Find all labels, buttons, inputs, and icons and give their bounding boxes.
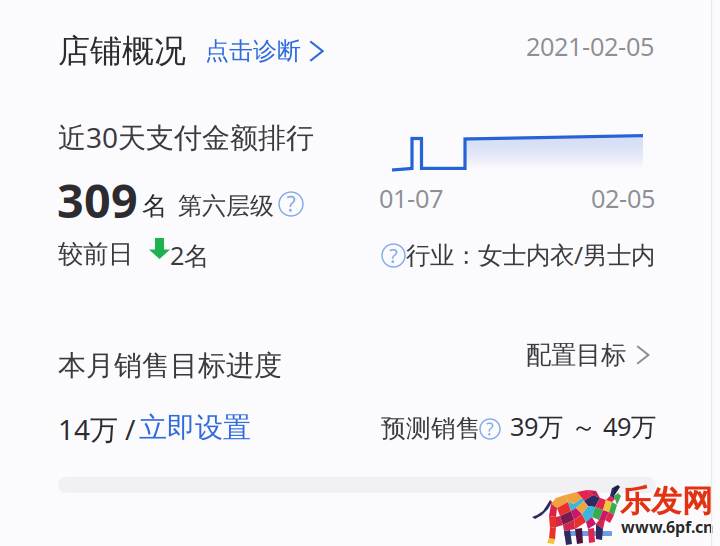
staticText: 2021-02-05 — [526, 29, 654, 63]
staticText: 2名 — [170, 238, 209, 272]
button[interactable]: 配置目标 — [526, 339, 650, 371]
staticText: 01-07 — [379, 181, 443, 215]
staticText: 第六层级 — [178, 191, 274, 221]
staticText: 02-05 — [591, 181, 655, 215]
staticText: 名 — [142, 190, 167, 222]
staticText: 配置目标 — [526, 339, 626, 371]
staticText: 乐发网 — [620, 482, 713, 521]
staticText: ? — [486, 417, 494, 441]
staticText: 较前日 — [58, 238, 133, 270]
staticText: 本月销售目标进度 — [58, 348, 282, 383]
staticText: 近30天支付金额排行 — [58, 118, 314, 156]
button[interactable]: 立即设置 — [139, 410, 251, 445]
staticText: 309 — [57, 168, 138, 232]
staticText: 行业：女士内衣/男士内 — [406, 238, 655, 271]
staticText: 店铺概况 — [58, 31, 186, 71]
staticText: ? — [389, 241, 398, 269]
staticText: www.6pf.cn — [621, 516, 713, 538]
staticText: 点击诊断 — [205, 36, 301, 66]
button[interactable]: 点击诊断 — [205, 36, 325, 66]
staticText: 立即设置 — [139, 410, 251, 445]
staticText: 14万 / — [58, 410, 135, 448]
staticText: 预测销售 — [381, 413, 481, 444]
staticText: 39万 ～ 49万 — [510, 409, 656, 443]
staticText: ? — [286, 189, 295, 218]
